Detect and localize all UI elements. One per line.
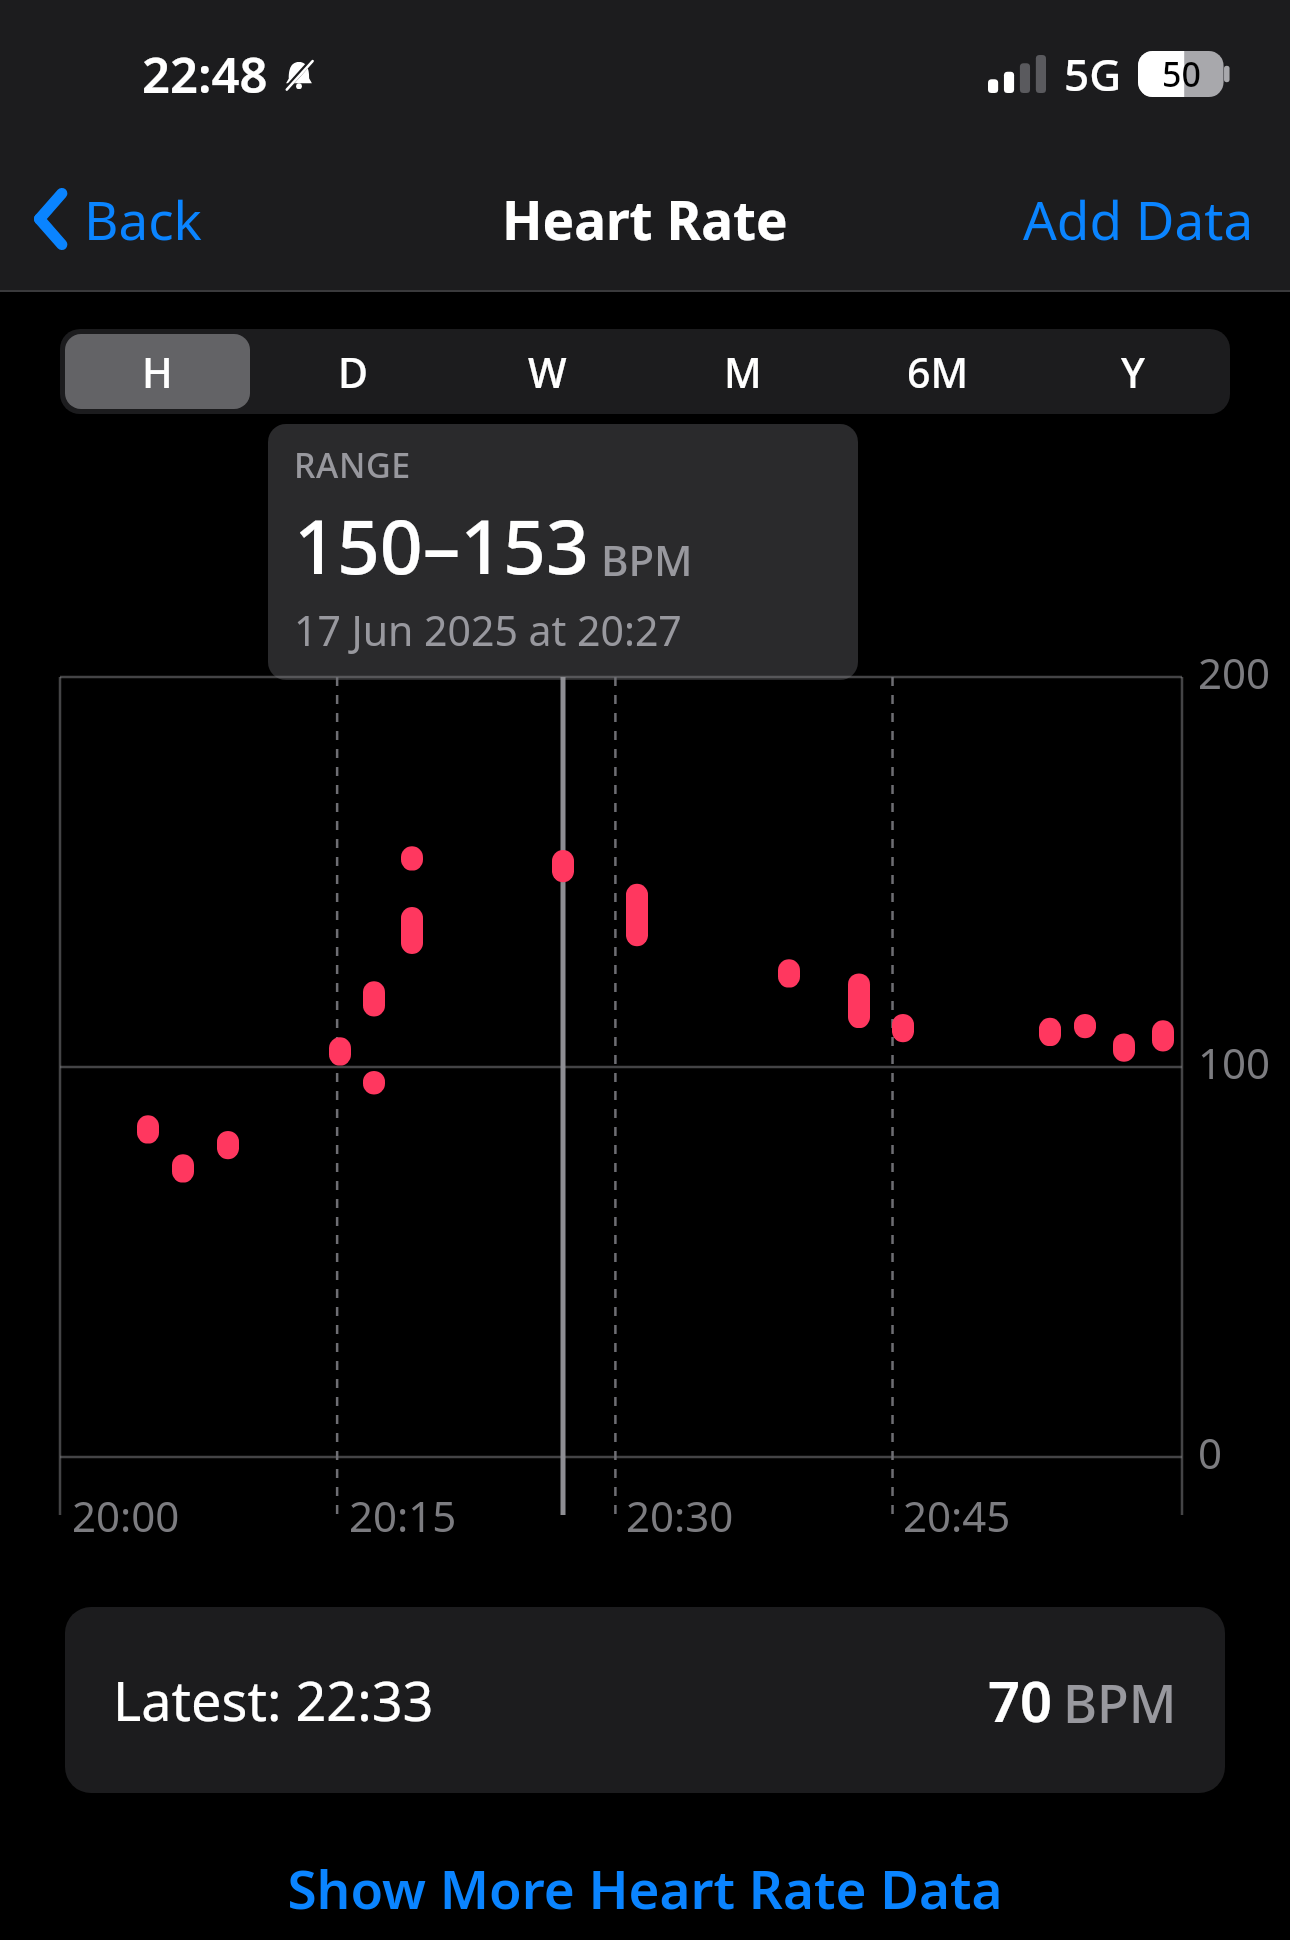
- staticText: 5G: [1064, 44, 1122, 104]
- staticText: 6M: [907, 344, 969, 400]
- staticText: BPM: [1063, 1667, 1177, 1738]
- staticText: H: [142, 344, 173, 400]
- staticText: 22:48: [142, 41, 268, 108]
- button[interactable]: M: [650, 334, 835, 409]
- button[interactable]: W: [455, 334, 640, 409]
- staticText: 20:45: [903, 1487, 1011, 1544]
- staticText: 0: [1198, 1424, 1223, 1481]
- staticText: 50: [1162, 51, 1201, 97]
- staticText: 17 Jun 2025 at 20:27: [294, 602, 682, 658]
- staticText: 100: [1198, 1034, 1271, 1091]
- staticText: D: [338, 344, 368, 400]
- staticText: M: [724, 344, 762, 400]
- staticText: 20:00: [72, 1487, 180, 1544]
- staticText: BPM: [601, 531, 693, 588]
- button[interactable]: Add Data: [987, 165, 1290, 273]
- staticText: Back: [84, 183, 202, 255]
- other: Heart rate chart: [0, 652, 1290, 1512]
- staticText: 200: [1198, 644, 1271, 701]
- staticText: 70: [988, 1662, 1053, 1738]
- button[interactable]: H: [65, 334, 250, 409]
- button[interactable]: 6M: [845, 334, 1030, 409]
- staticText: W: [528, 344, 567, 400]
- button[interactable]: Latest: 22:33: [65, 1607, 1225, 1793]
- staticText: Latest: 22:33: [113, 1663, 434, 1737]
- button[interactable]: Y: [1040, 334, 1225, 409]
- button[interactable]: D: [260, 334, 445, 409]
- staticText: 20:30: [626, 1487, 734, 1544]
- staticText: Heart Rate: [502, 183, 788, 255]
- button[interactable]: Back: [0, 167, 226, 271]
- staticText: Y: [1121, 344, 1145, 400]
- staticText: RANGE: [294, 442, 411, 488]
- button[interactable]: Show More Heart Rate Data: [0, 1840, 1290, 1936]
- staticText: 150–153: [294, 494, 589, 596]
- staticText: 20:15: [349, 1487, 457, 1544]
